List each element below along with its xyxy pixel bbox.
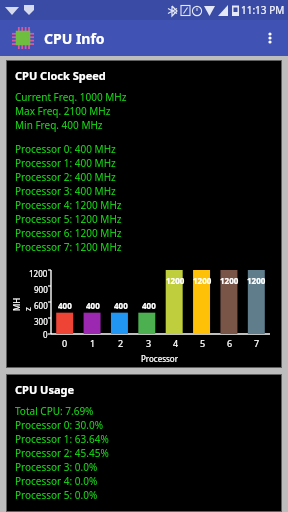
- button[interactable]: More options: [252, 20, 288, 56]
- staticText: 1200: [166, 275, 185, 286]
- staticText: 400: [58, 300, 72, 311]
- staticText: CPU Usage: [15, 382, 75, 397]
- staticText: Processor 3: 400 MHz: [15, 184, 116, 198]
- staticText: Processor 7: 1200 MHz: [15, 240, 122, 254]
- staticText: Processor 2: 45.45%: [15, 446, 109, 460]
- staticText: Current Freq. 1000 MHz: [15, 90, 127, 104]
- staticText: 11:13 PM: [241, 3, 285, 17]
- staticText: 1200: [220, 275, 239, 286]
- staticText: Processor: [141, 353, 178, 364]
- staticText: Processor 2: 400 MHz: [15, 170, 116, 184]
- staticText: Processor 5: 1200 MHz: [15, 212, 122, 226]
- staticText: Processor 0: 400 MHz: [15, 142, 116, 156]
- staticText: 2: [118, 337, 124, 349]
- staticText: 1200: [29, 268, 48, 279]
- staticText: CPU Info: [44, 29, 105, 48]
- staticText: Processor 1: 63.64%: [15, 432, 109, 446]
- staticText: Total CPU: 7.69%: [15, 404, 94, 418]
- staticText: Max Freq. 2100 MHz: [15, 104, 111, 118]
- staticText: MHz: [11, 297, 33, 311]
- staticText: 0: [62, 337, 68, 349]
- staticText: 600: [34, 300, 48, 311]
- staticText: 6: [227, 337, 233, 349]
- staticText: Processor 6: 1200 MHz: [15, 226, 122, 240]
- staticText: 1200: [247, 275, 266, 286]
- staticText: Processor 0: 30.0%: [15, 418, 103, 432]
- staticText: 400: [142, 300, 156, 311]
- staticText: 1200: [193, 275, 212, 286]
- staticText: CPU Clock Speed: [15, 68, 106, 83]
- staticText: 400: [114, 300, 128, 311]
- staticText: Min Freq. 400 MHz: [15, 118, 103, 132]
- staticText: 4: [173, 337, 179, 349]
- staticText: Processor 4: 1200 MHz: [15, 198, 122, 212]
- staticText: Processor 5: 0.0%: [15, 488, 98, 502]
- staticText: 300: [34, 316, 48, 327]
- staticText: 400: [86, 300, 100, 311]
- staticText: Processor 1: 400 MHz: [15, 156, 116, 170]
- staticText: Processor 4: 0.0%: [15, 474, 98, 488]
- staticText: 0: [43, 329, 48, 339]
- staticText: 1: [90, 337, 96, 349]
- staticText: 7: [254, 337, 260, 349]
- staticText: 900: [34, 284, 48, 295]
- staticText: Processor 3: 0.0%: [15, 460, 98, 474]
- staticText: 5: [200, 337, 206, 349]
- staticText: 3: [146, 337, 152, 349]
